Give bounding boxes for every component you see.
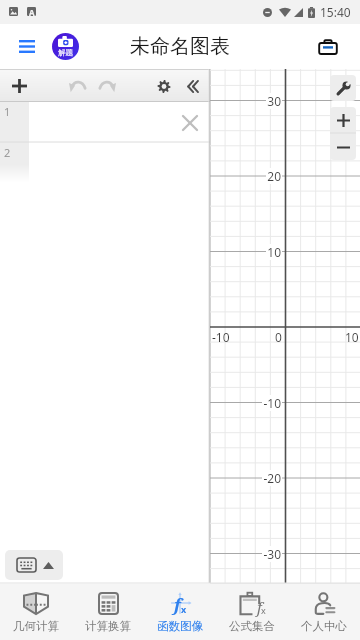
button[interactable]: 个人中心	[288, 584, 360, 640]
button[interactable]: 2	[0, 143, 210, 183]
button[interactable]: 1	[0, 102, 210, 143]
button[interactable]: f	[216, 584, 288, 640]
staticText: -10	[263, 395, 281, 411]
staticText: 1	[4, 104, 11, 119]
button[interactable]: Undo	[61, 70, 93, 102]
staticText: 个人中心	[301, 619, 347, 633]
button[interactable]: Menu	[13, 33, 40, 60]
staticText: -10	[212, 329, 230, 345]
button[interactable]: Settings	[148, 70, 180, 102]
button[interactable]: Toolbox	[314, 33, 342, 61]
button[interactable]: Collapse panel	[176, 70, 208, 102]
button[interactable]: f	[144, 584, 216, 640]
staticText: 0	[275, 329, 282, 345]
staticText: 未命名图表	[130, 34, 230, 59]
button[interactable]: 几何计算	[0, 584, 72, 640]
button[interactable]: 计算换算	[72, 584, 144, 640]
staticText: 20	[267, 168, 281, 184]
staticText: 函数图像	[157, 619, 203, 633]
staticText: A	[29, 7, 35, 16]
staticText: 公式集合	[229, 619, 275, 633]
staticText: 10	[345, 329, 359, 345]
button[interactable]: Add expression	[3, 70, 35, 102]
button[interactable]: Graph settings	[330, 75, 356, 101]
staticText: f	[257, 597, 262, 617]
button[interactable]: Zoom in	[330, 107, 356, 133]
staticText: 解题	[58, 48, 73, 57]
staticText: 计算换算	[85, 619, 131, 633]
button[interactable]: Scan to solve	[52, 33, 79, 60]
staticText: -30	[263, 546, 281, 562]
staticText: 2	[4, 145, 11, 160]
button[interactable]: Redo	[91, 70, 123, 102]
button[interactable]: Zoom out	[330, 134, 356, 160]
staticText: 几何计算	[13, 619, 59, 633]
staticText: 10	[267, 244, 281, 260]
staticText: 30	[267, 93, 281, 109]
staticText: -20	[263, 470, 281, 486]
button[interactable]: Show keyboard	[5, 550, 63, 580]
staticText: 15:40	[320, 4, 351, 20]
staticText: x	[181, 603, 187, 615]
staticText: x	[261, 604, 266, 616]
staticText: f	[174, 593, 181, 616]
